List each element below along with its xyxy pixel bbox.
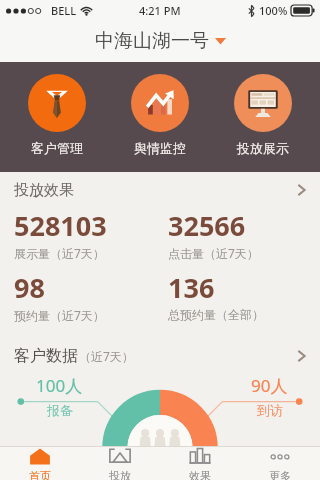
staticText: （近7天） <box>79 348 134 364</box>
staticText: 100人 <box>36 374 83 397</box>
staticText: 展示量（近7天） <box>14 245 105 261</box>
button[interactable]: 客户管理 <box>11 72 103 158</box>
staticText: 客户管理 <box>31 140 83 156</box>
staticText: 到访 <box>257 402 283 418</box>
staticText: 32566 <box>168 207 246 244</box>
staticText: 点击量（近7天） <box>168 245 259 261</box>
button[interactable]: 首页 <box>0 447 80 480</box>
staticText: 舆情监控 <box>134 140 186 156</box>
staticText: 90人 <box>251 374 288 397</box>
staticText: 预约量（近7天） <box>14 307 105 323</box>
staticText: 136 <box>168 269 215 306</box>
staticText: 100% <box>259 3 288 18</box>
staticText: 528103 <box>14 207 107 244</box>
staticText: 4:21 PM <box>139 3 181 18</box>
staticText: 98 <box>14 269 45 306</box>
staticText: BELL <box>51 3 77 18</box>
staticText: 客户数据 <box>14 346 78 366</box>
staticText: 效果 <box>189 469 211 480</box>
staticText: 首页 <box>29 469 51 480</box>
staticText: 更多 <box>269 469 291 480</box>
button[interactable]: 客户数据 <box>0 340 320 372</box>
button[interactable]: 舆情监控 <box>114 72 206 158</box>
staticText: 投放效果 <box>14 181 74 200</box>
button[interactable]: 投放效果 <box>0 173 320 207</box>
button[interactable]: 投放 <box>80 447 160 480</box>
staticText: 投放展示 <box>237 140 289 156</box>
button[interactable]: 效果 <box>160 447 240 480</box>
staticText: 报备 <box>47 402 73 418</box>
staticText: 投放 <box>109 469 131 480</box>
button[interactable]: 更多 <box>240 447 320 480</box>
staticText: 中海山湖一号 <box>95 29 209 53</box>
button[interactable]: 中海山湖一号 <box>0 20 320 62</box>
button[interactable]: 投放展示 <box>217 72 309 158</box>
staticText: 总预约量（全部） <box>168 307 264 322</box>
